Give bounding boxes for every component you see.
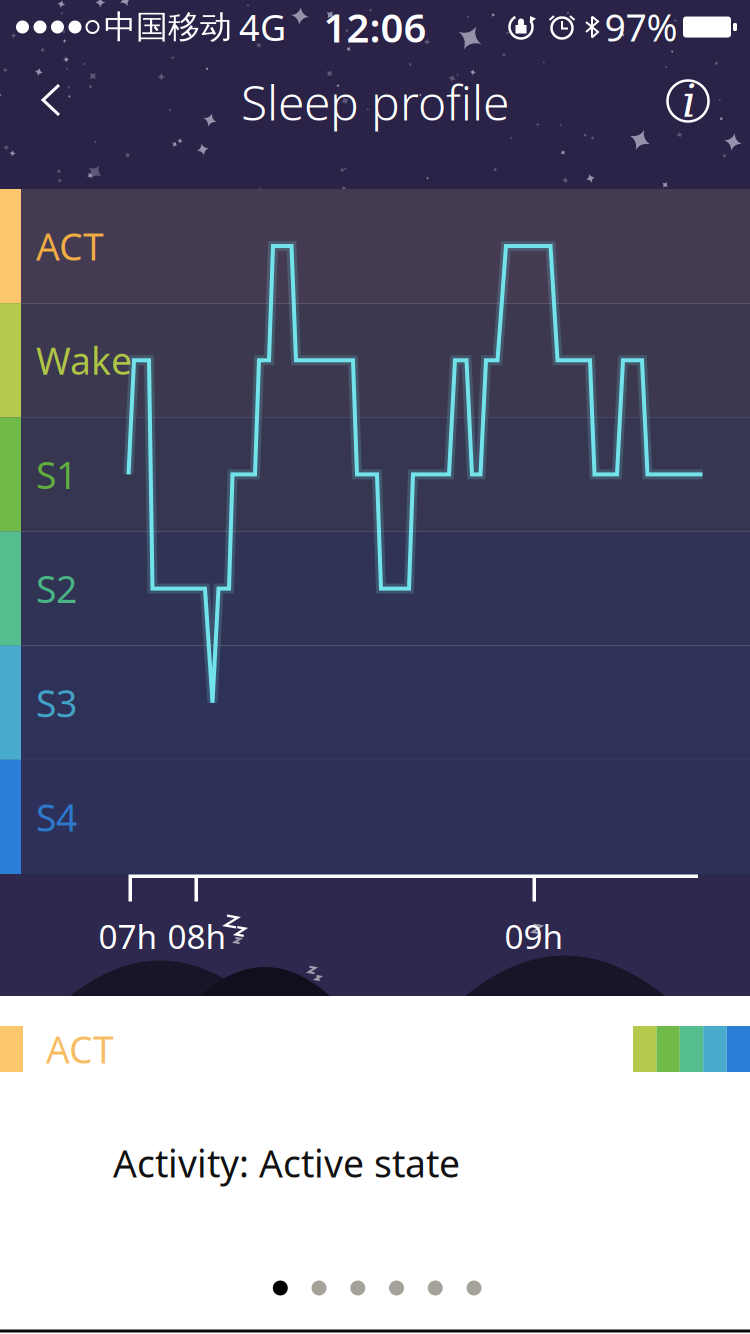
staticText: i: [682, 75, 696, 127]
staticText: Activity: Active state: [113, 1138, 460, 1188]
staticText: Wake: [36, 335, 132, 385]
staticText: 07h: [98, 914, 157, 958]
staticText: ACT: [36, 221, 104, 271]
staticText: 4G: [239, 3, 286, 51]
button[interactable]: Info: [658, 71, 718, 131]
button[interactable]: Back: [0, 70, 80, 130]
staticText: ACT: [46, 1024, 114, 1074]
staticText: 08h: [167, 914, 226, 958]
staticText: 12:06: [323, 0, 426, 53]
staticText: Sleep profile: [241, 70, 509, 134]
staticText: S3: [36, 678, 77, 728]
staticText: S2: [36, 564, 77, 613]
staticText: 97%: [604, 2, 677, 52]
staticText: S4: [36, 792, 77, 842]
staticText: 中国移动: [104, 7, 232, 47]
staticText: 09h: [504, 914, 563, 958]
staticText: S1: [36, 450, 77, 499]
